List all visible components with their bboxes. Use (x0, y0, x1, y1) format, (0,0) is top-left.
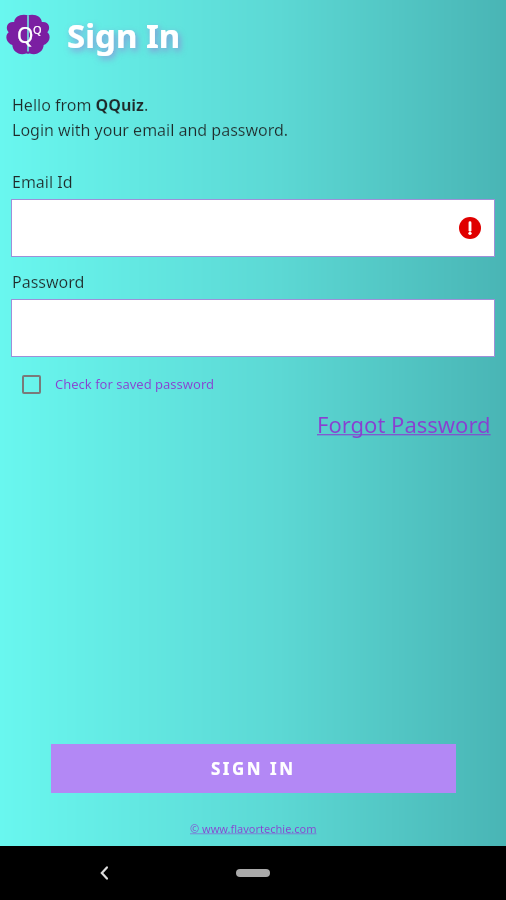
staticText: Forgot Password (317, 409, 491, 439)
staticText: Email Id (12, 171, 73, 193)
button[interactable]: Check for saved password (22, 369, 214, 399)
staticText: Q (33, 22, 42, 37)
staticText: Password (12, 271, 85, 293)
staticText: Hello from QQuiz. (12, 94, 149, 116)
button[interactable]: © www.flavortechie.com (190, 821, 317, 836)
staticText: Q (17, 21, 34, 50)
staticText: SIGN IN (211, 757, 296, 780)
button[interactable]: Back (90, 858, 120, 888)
staticText: © www.flavortechie.com (190, 821, 317, 836)
staticText: Login with your email and password. (12, 119, 289, 141)
button[interactable]: Error (11, 199, 495, 257)
staticText: Sign In (67, 13, 181, 58)
staticText: Check for saved password (55, 375, 214, 393)
button[interactable]: SIGN IN (51, 744, 456, 793)
other: Error (459, 217, 481, 239)
button[interactable]: Forgot Password (317, 409, 491, 439)
button[interactable]: Home (236, 869, 270, 877)
button[interactable] (11, 299, 495, 357)
